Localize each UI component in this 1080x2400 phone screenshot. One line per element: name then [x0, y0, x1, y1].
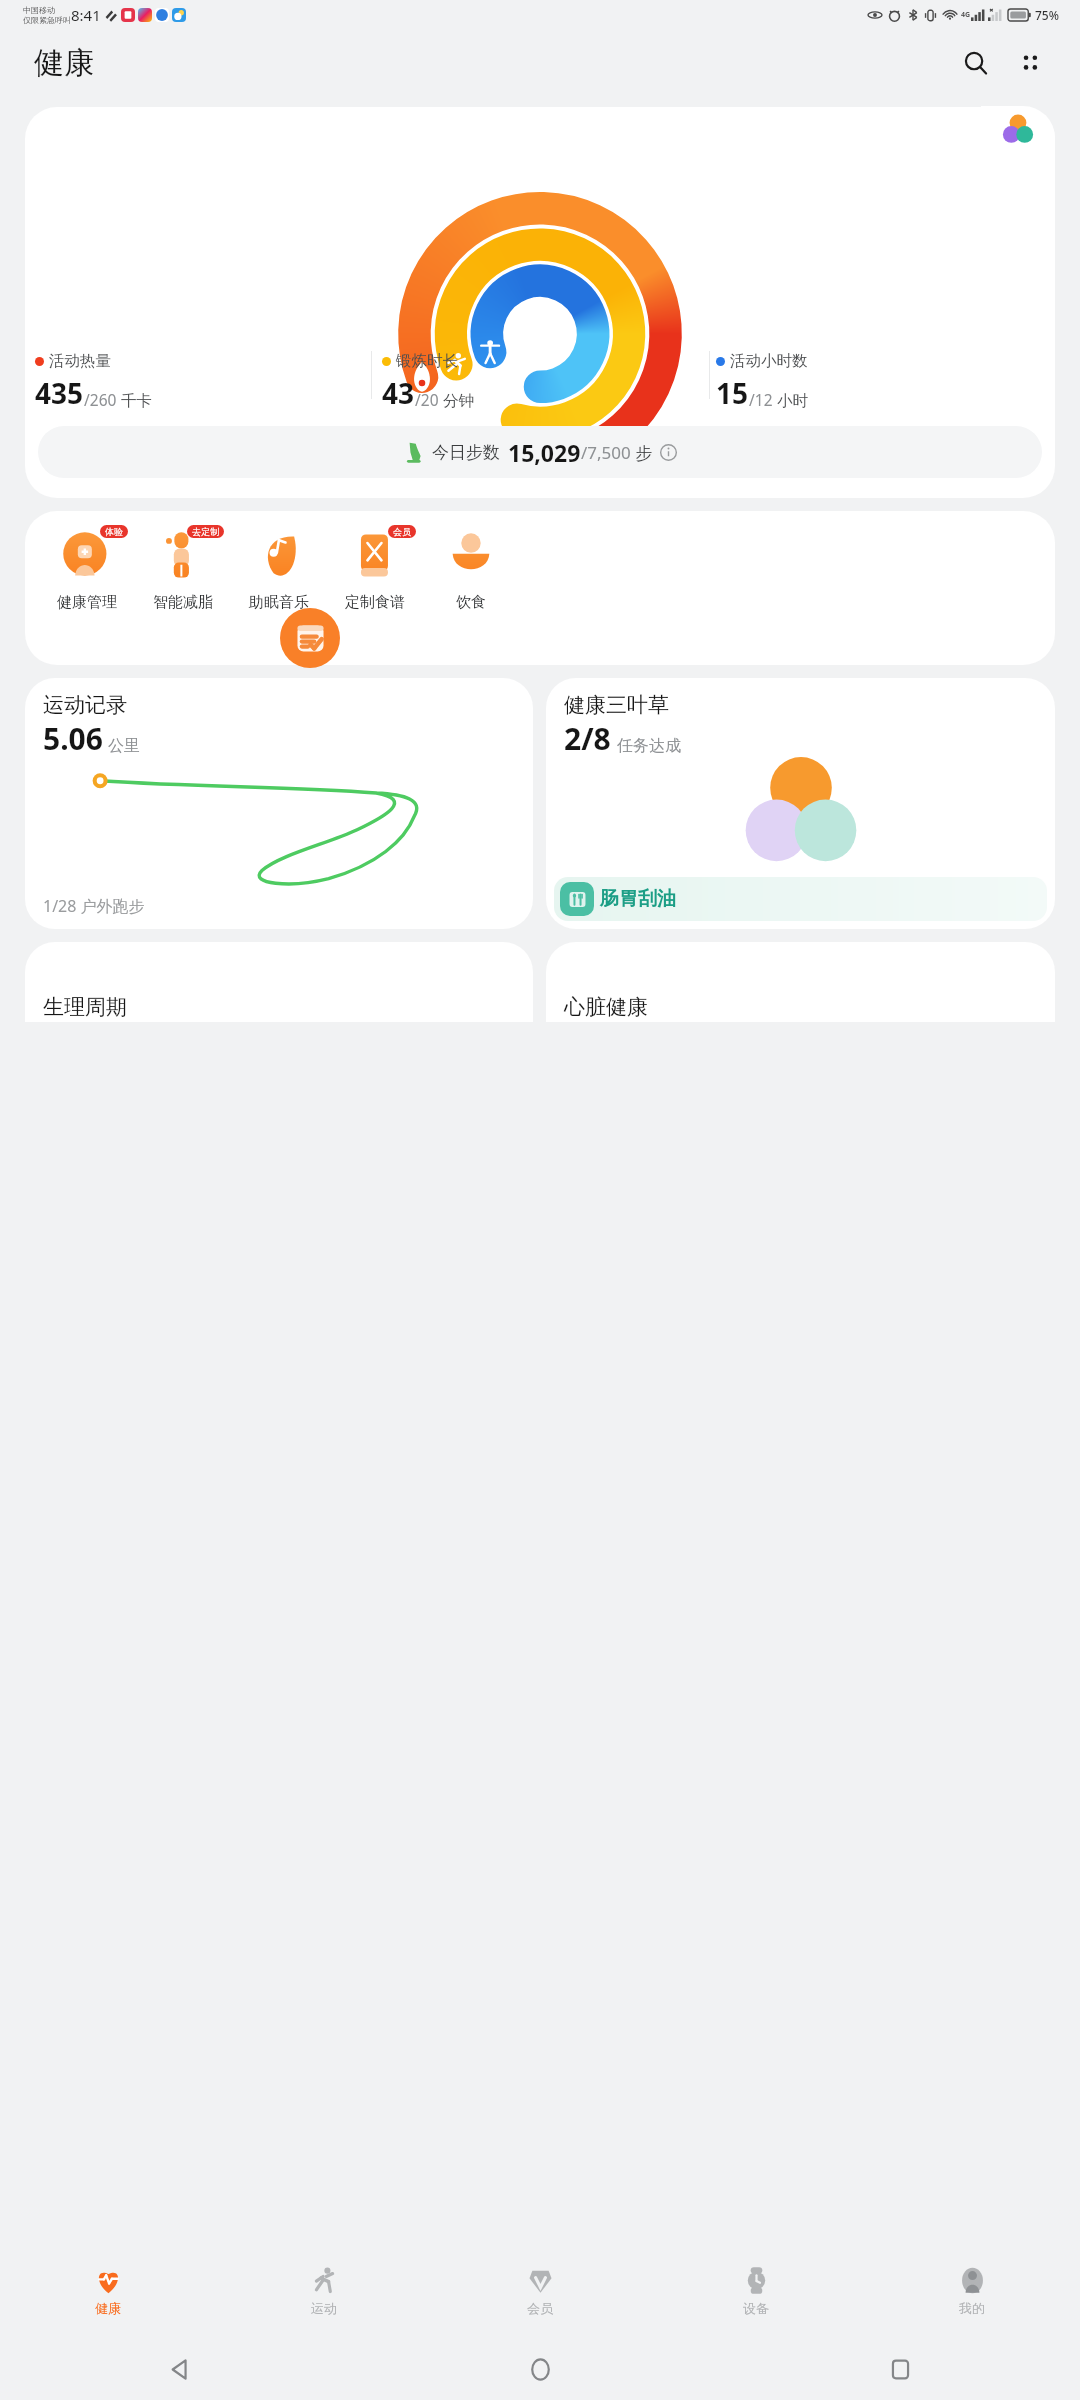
staticText: 15	[716, 374, 749, 412]
button[interactable]: 饮食	[423, 527, 519, 612]
staticText: /7,500	[581, 441, 631, 464]
staticText: 小时	[773, 389, 809, 410]
staticText: 435	[35, 374, 84, 412]
button[interactable]: Health profile	[981, 106, 1055, 154]
button[interactable]: Search	[954, 41, 998, 85]
staticText: 生理周期	[43, 994, 127, 1020]
staticText: 活动小时数	[730, 351, 808, 371]
staticText: 中国移动	[23, 5, 55, 15]
button[interactable]: 去定制	[135, 527, 231, 612]
staticText: 任务达成	[617, 736, 681, 756]
staticText: 智能减脂	[153, 593, 213, 612]
staticText: 会员	[393, 526, 411, 537]
button[interactable]: 心脏健康	[546, 942, 1055, 1022]
staticText: 千卡	[117, 389, 153, 410]
staticText: 健康三叶草	[564, 692, 669, 718]
button[interactable]: 锻炼时长	[372, 351, 709, 412]
button[interactable]: 我的	[864, 2243, 1080, 2339]
staticText: 饮食	[456, 593, 486, 612]
button[interactable]: 助眠音乐	[231, 527, 327, 612]
staticText: 锻炼时长	[396, 351, 458, 371]
staticText: 去定制	[192, 526, 219, 537]
button[interactable]: 会员	[327, 527, 423, 612]
button[interactable]: 健康三叶草	[546, 678, 1055, 929]
staticText: 活动热量	[49, 351, 111, 371]
staticText: 步	[631, 441, 653, 464]
button[interactable]: Back	[0, 2339, 360, 2400]
button[interactable]: 活动热量	[33, 351, 371, 412]
staticText: 心脏健康	[564, 994, 648, 1020]
button[interactable]: 活动小时数	[710, 351, 1047, 412]
staticText: 健康	[95, 2300, 121, 2316]
button[interactable]: More options	[1008, 41, 1052, 85]
button[interactable]: Recents	[720, 2339, 1080, 2400]
staticText: /12	[749, 389, 773, 410]
staticText: 4G	[961, 10, 971, 20]
staticText: 今日步数	[432, 442, 500, 463]
staticText: 公里	[108, 736, 140, 756]
staticText: 运动记录	[43, 692, 127, 718]
staticText: 肠胃刮油	[600, 887, 676, 911]
staticText: 分钟	[439, 389, 475, 410]
staticText: /20	[415, 389, 439, 410]
button[interactable]: 今日步数	[38, 426, 1042, 478]
staticText: 仅限紧急呼叫	[23, 15, 71, 25]
button[interactable]: 健康	[0, 2243, 216, 2339]
staticText: 15,029	[508, 437, 581, 468]
staticText: /260	[84, 389, 117, 410]
staticText: 设备	[743, 2300, 769, 2316]
button[interactable]: Home	[360, 2339, 720, 2400]
staticText: 2/8	[564, 718, 611, 759]
button[interactable]: 活动热量	[25, 107, 1055, 498]
staticText: 助眠音乐	[249, 593, 309, 612]
staticText: 会员	[527, 2300, 553, 2316]
staticText: 健康管理	[57, 593, 117, 612]
button[interactable]: 设备	[648, 2243, 864, 2339]
staticText: 1/28 户外跑步	[43, 895, 145, 917]
button[interactable]: 肠胃刮油	[554, 877, 1047, 921]
button[interactable]: 运动	[216, 2243, 432, 2339]
staticText: 健康	[34, 44, 94, 82]
staticText: 运动	[311, 2300, 337, 2316]
staticText: 5.06	[43, 718, 103, 759]
button[interactable]: 会员	[432, 2243, 648, 2339]
staticText: 我的	[959, 2300, 985, 2316]
staticText: 43	[382, 374, 415, 412]
staticText: 体验	[105, 526, 123, 537]
button[interactable]: 体验	[39, 527, 135, 612]
staticText: 8:41	[71, 5, 101, 25]
button[interactable]: 生理周期	[25, 942, 533, 1022]
staticText: 75%	[1035, 7, 1059, 23]
button[interactable]: 运动记录	[25, 678, 533, 929]
staticText: 定制食谱	[345, 593, 405, 612]
button[interactable]: Add health record	[280, 608, 340, 668]
